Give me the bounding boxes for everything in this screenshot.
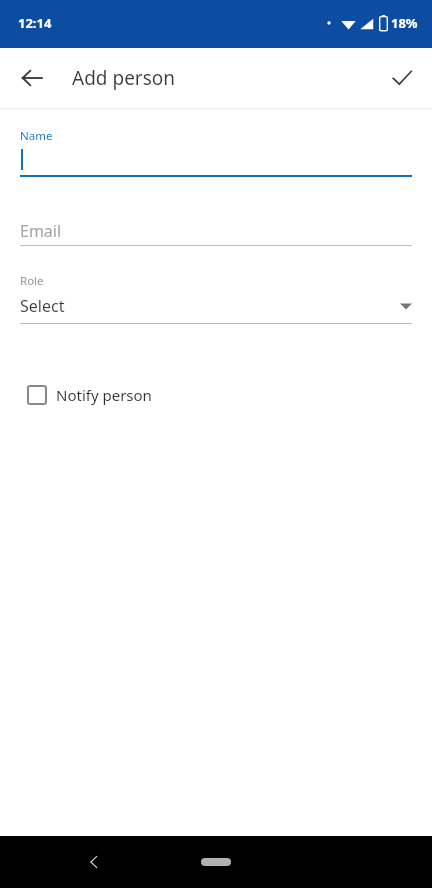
- button[interactable]: Notify person: [24, 382, 152, 408]
- staticText: Role: [20, 273, 44, 289]
- button[interactable]: Select: [20, 293, 412, 319]
- staticText: Notify person: [56, 385, 152, 405]
- staticText: Email: [20, 220, 62, 242]
- button[interactable]: [20, 144, 412, 175]
- staticText: Add person: [72, 65, 176, 91]
- staticText: Name: [20, 128, 53, 144]
- button[interactable]: Back: [74, 842, 114, 882]
- staticText: Select: [20, 295, 400, 317]
- button[interactable]: Save: [378, 54, 426, 102]
- button[interactable]: Home: [188, 842, 244, 882]
- button[interactable]: Email: [20, 217, 412, 245]
- staticText: 18%: [391, 14, 418, 32]
- button[interactable]: Back: [8, 54, 56, 102]
- staticText: 12:14: [18, 14, 52, 32]
